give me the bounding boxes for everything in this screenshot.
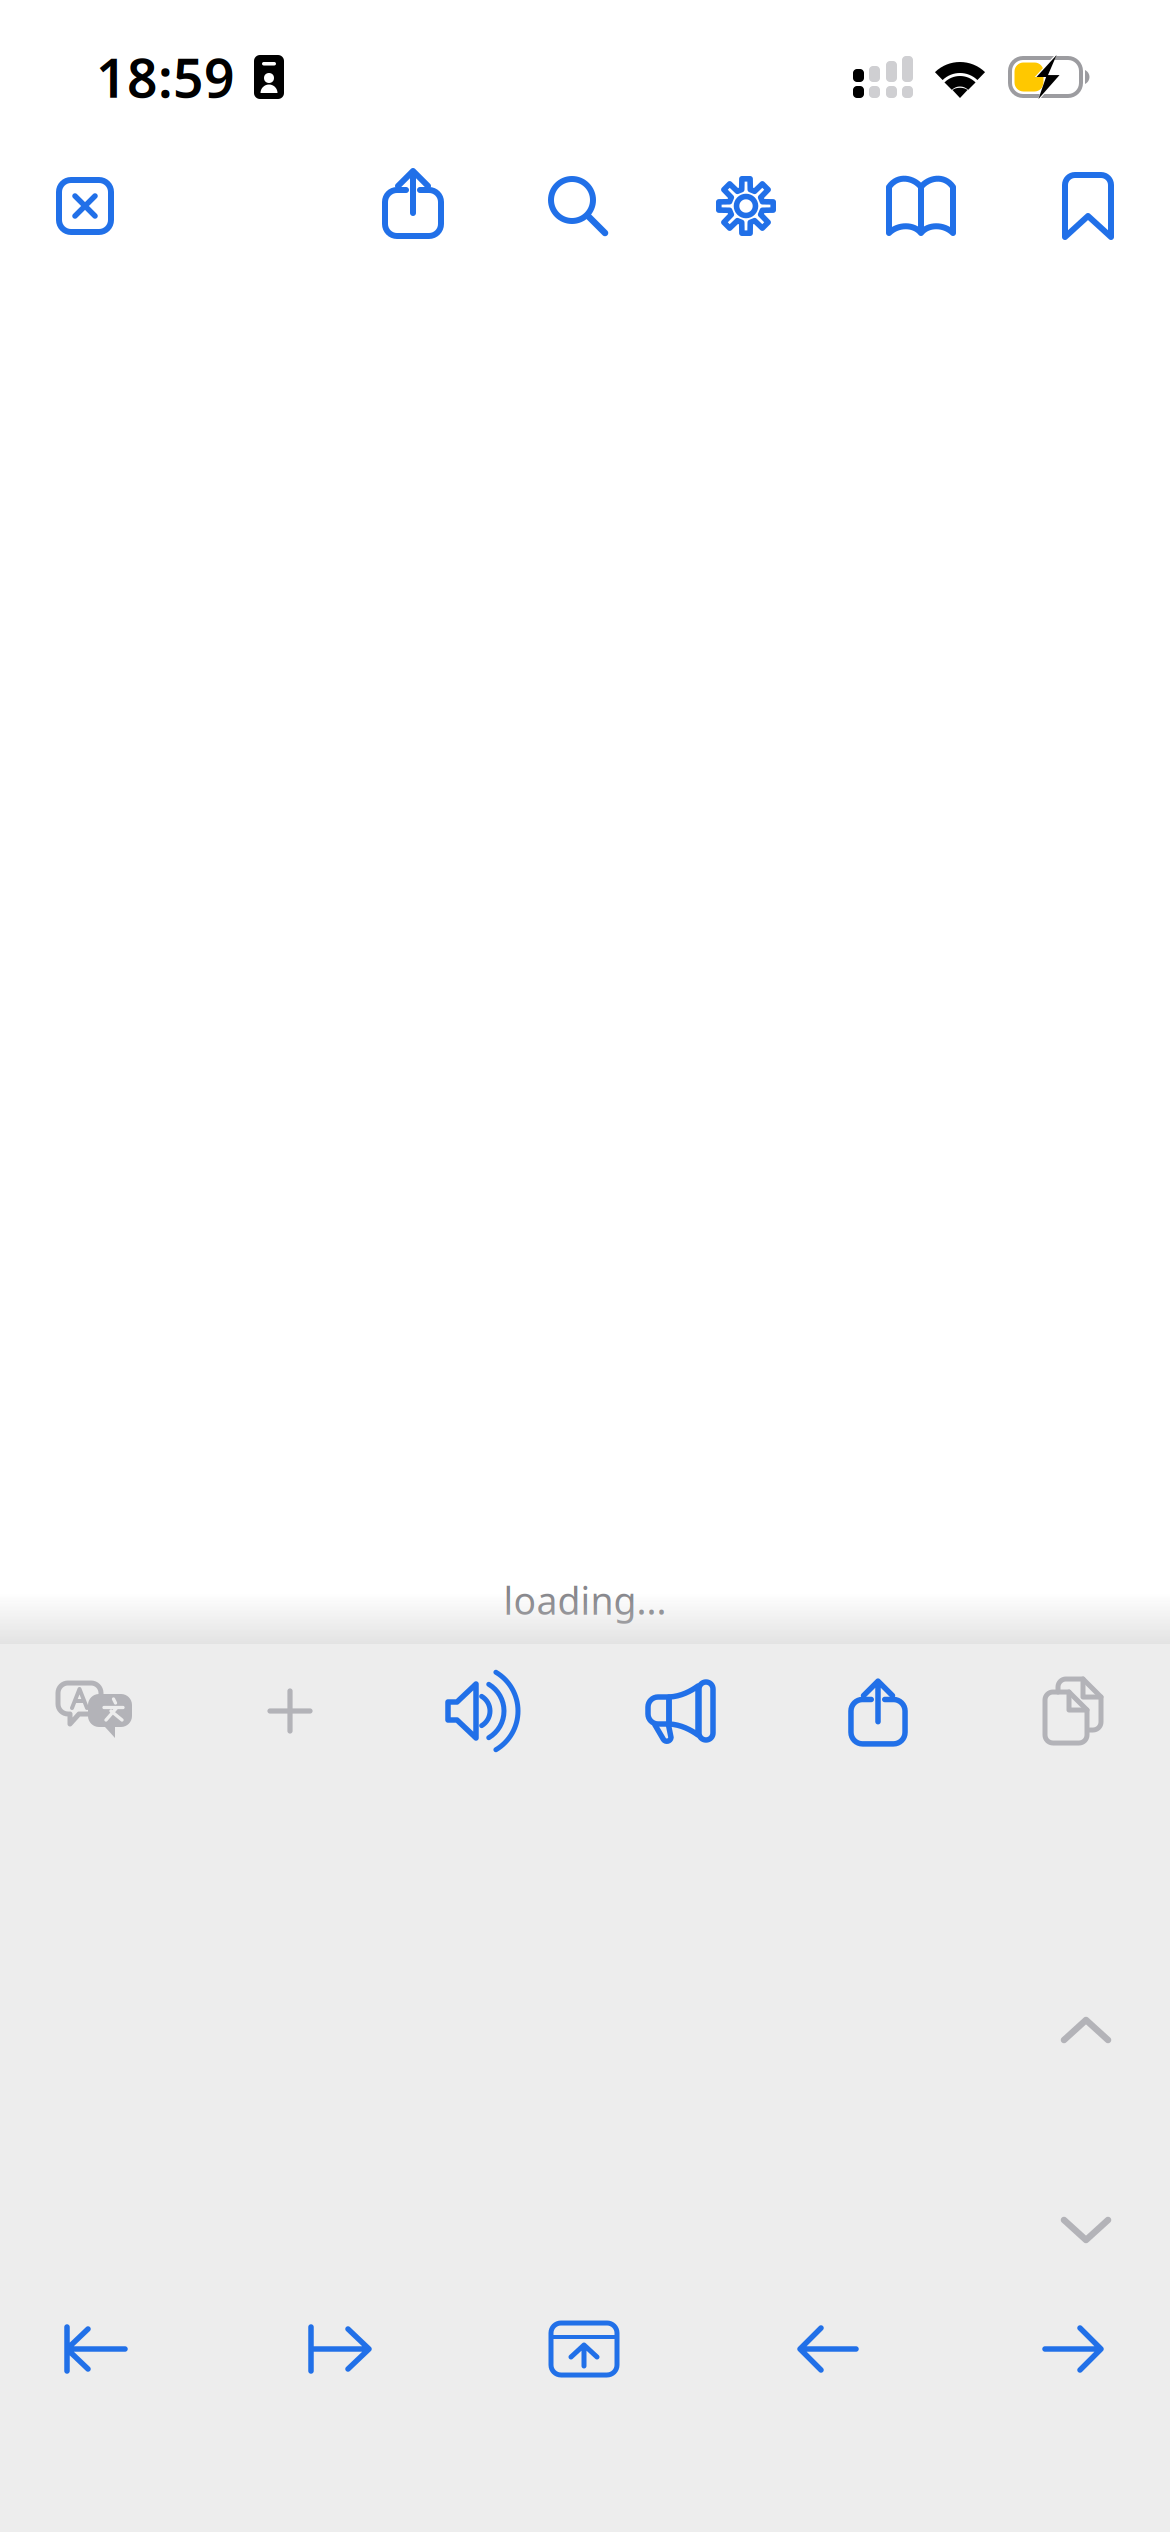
button[interactable]: Translate bbox=[55, 1680, 135, 1742]
button[interactable]: Previous field bbox=[1060, 2015, 1112, 2045]
button[interactable]: Jump to end bbox=[308, 2324, 372, 2374]
button[interactable]: Speak bbox=[445, 1680, 527, 1742]
button[interactable]: Settings bbox=[715, 175, 776, 236]
button[interactable]: Next field bbox=[1060, 2215, 1112, 2245]
button[interactable]: Jump to start bbox=[64, 2324, 128, 2374]
staticText: loading... bbox=[503, 1575, 666, 1625]
button[interactable]: Bookmark bbox=[1062, 172, 1114, 240]
button[interactable]: Copy bbox=[1042, 1676, 1104, 1746]
button[interactable]: Announce bbox=[645, 1678, 719, 1744]
staticText: 18:59 bbox=[96, 42, 235, 112]
button[interactable]: Add bbox=[267, 1688, 313, 1734]
button[interactable]: Dismiss keyboard bbox=[548, 2320, 620, 2378]
button[interactable]: Forward bbox=[1042, 2324, 1104, 2374]
button[interactable]: Share bbox=[850, 1678, 906, 1748]
button[interactable]: Share bbox=[384, 168, 442, 240]
button[interactable]: Back bbox=[797, 2324, 859, 2374]
button[interactable]: Search bbox=[547, 175, 609, 237]
button[interactable]: Close bbox=[56, 177, 114, 235]
button[interactable]: Reader bbox=[886, 176, 956, 236]
